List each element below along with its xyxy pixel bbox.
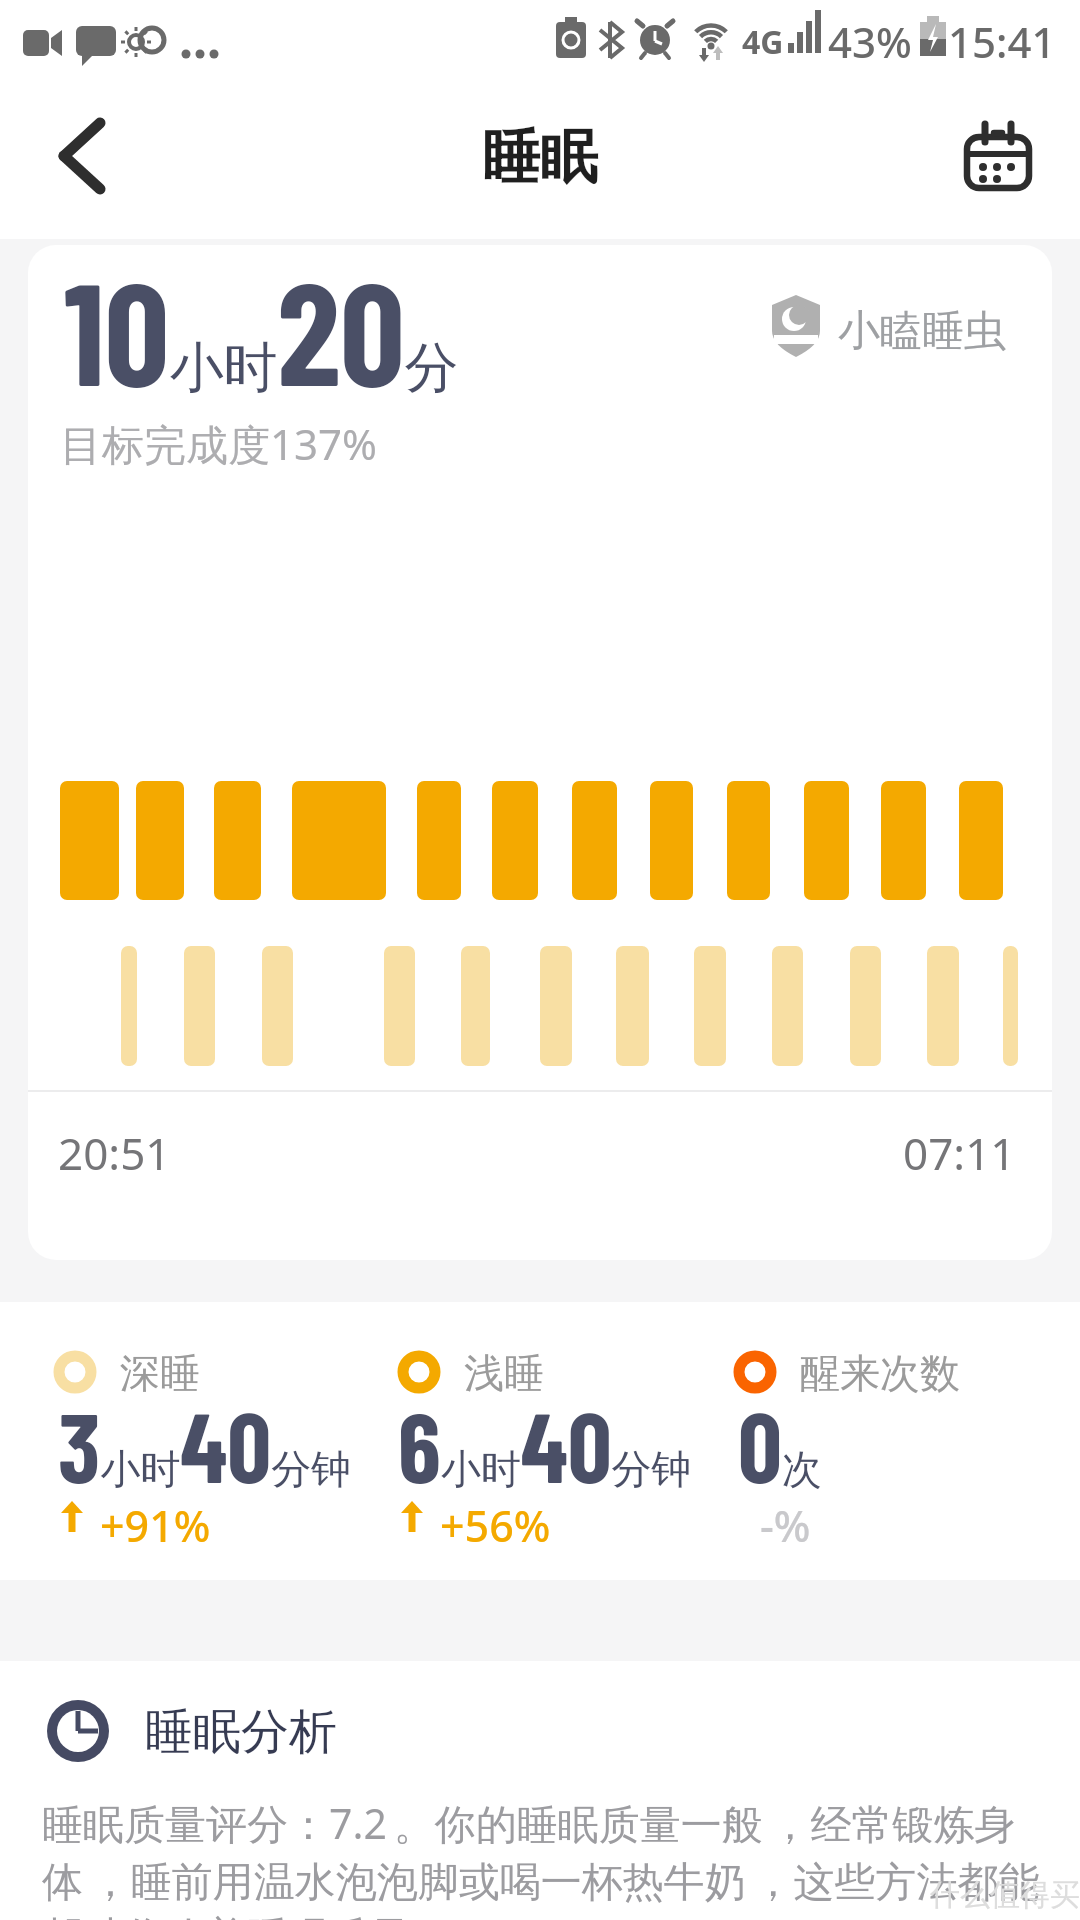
staticText: 10小时20分 xyxy=(64,245,459,415)
staticText: 20:51 xyxy=(58,1123,171,1183)
staticText: 醒来次数 xyxy=(800,1348,960,1398)
staticText: 目标完成度137% xyxy=(60,415,377,472)
staticText: 浅睡 xyxy=(464,1348,544,1398)
button[interactable] xyxy=(942,104,1052,204)
button[interactable] xyxy=(30,110,130,210)
staticText: 什么值得买 xyxy=(930,1876,1080,1914)
button[interactable] xyxy=(763,285,1013,365)
staticText: 深睡 xyxy=(120,1348,200,1398)
staticText: 6小时40分钟 xyxy=(398,1386,692,1502)
staticText: 睡眠分析 xyxy=(145,1702,337,1762)
staticText: +91% xyxy=(100,1496,211,1555)
staticText: 小瞌睡虫 xyxy=(838,305,1006,358)
staticText: 0次 xyxy=(738,1386,822,1502)
staticText: 15:41 xyxy=(948,13,1056,70)
staticText: 睡眠 xyxy=(482,121,598,194)
staticText: 睡眠质量评分：7.2 。你的睡眠质量一般 ，经常锻炼身 体 ，睡前用温水泡泡脚或… xyxy=(42,1795,1040,1920)
staticText: 3小时40分钟 xyxy=(58,1386,352,1502)
staticText: 43% xyxy=(828,13,912,70)
staticText: +56% xyxy=(440,1496,551,1555)
staticText: -% xyxy=(760,1496,811,1555)
staticText: 07:11 xyxy=(903,1123,1016,1183)
staticText: 4G xyxy=(742,20,784,64)
